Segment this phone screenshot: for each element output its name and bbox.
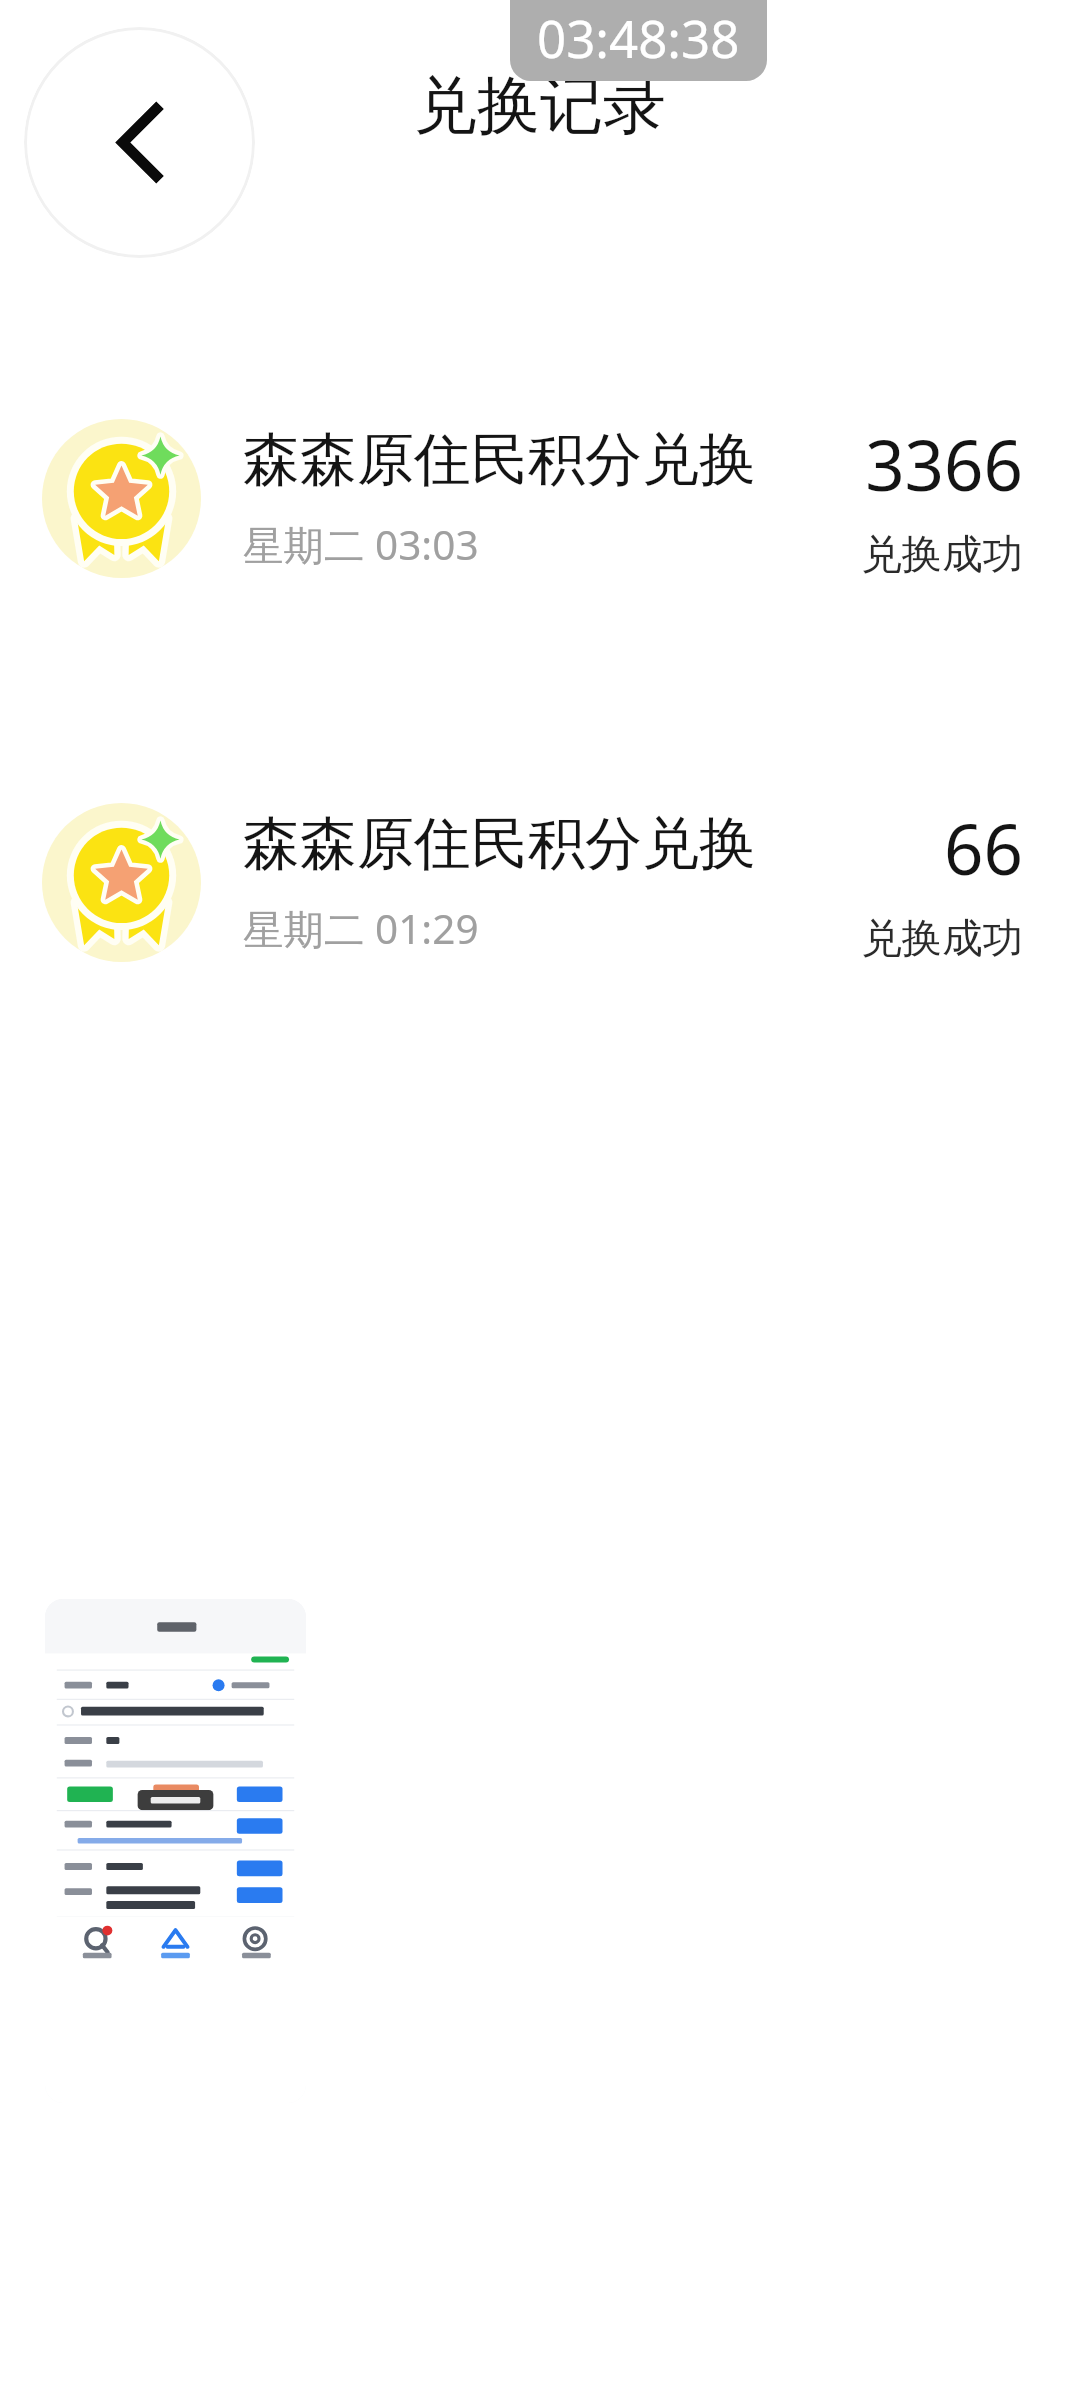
staticText: 星期二 03:03 — [243, 517, 479, 572]
staticText: 66 — [944, 801, 1023, 895]
staticText: 星期二 01:29 — [243, 901, 479, 956]
button[interactable]: 森森原住民积分兑换 — [0, 375, 1080, 621]
staticText: 兑换成功 — [861, 913, 1023, 964]
button[interactable]: Screenshot preview — [45, 1599, 306, 2103]
staticText: 兑换成功 — [861, 529, 1023, 580]
button[interactable]: Back — [24, 27, 255, 258]
staticText: 森森原住民积分兑换 — [243, 808, 756, 880]
button[interactable]: 森森原住民积分兑换 — [0, 759, 1080, 1005]
staticText: 03:48:38 — [537, 3, 740, 72]
staticText: 3366 — [865, 417, 1023, 511]
staticText: 森森原住民积分兑换 — [243, 424, 756, 496]
staticText: 兑换记录 — [414, 66, 666, 145]
